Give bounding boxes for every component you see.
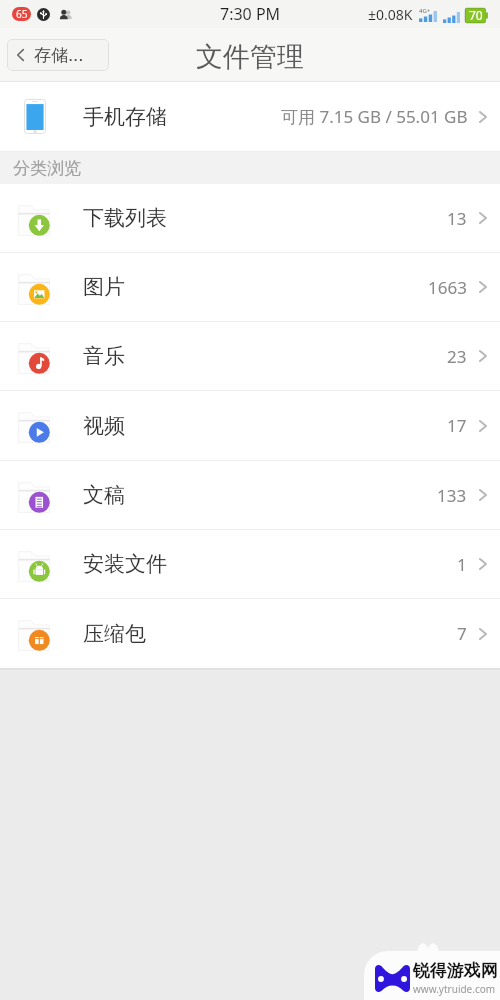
staticText: 7 bbox=[457, 622, 467, 645]
staticText: 7:30 PM bbox=[220, 3, 281, 25]
button[interactable]: 安装文件 bbox=[0, 530, 500, 598]
staticText: www.ytruide.com bbox=[413, 982, 496, 996]
staticText: 手机存储 bbox=[83, 104, 167, 130]
button[interactable]: 下载列表 bbox=[0, 184, 500, 252]
staticText: 70 bbox=[469, 7, 483, 23]
staticText: 可用 7.15 GB / 55.01 GB bbox=[281, 105, 468, 128]
staticText: 存储... bbox=[34, 45, 84, 66]
button[interactable]: 返回 存储 bbox=[7, 39, 109, 71]
button[interactable]: 图片 bbox=[0, 253, 500, 321]
staticText: 安装文件 bbox=[83, 551, 167, 577]
staticText: 65 bbox=[16, 7, 28, 21]
staticText: 视频 bbox=[83, 413, 125, 439]
staticText: 音乐 bbox=[83, 343, 125, 369]
staticText: 1663 bbox=[428, 276, 467, 299]
button[interactable]: 视频 bbox=[0, 391, 500, 460]
staticText: 锐得游戏网 bbox=[413, 960, 498, 981]
staticText: 文件管理 bbox=[196, 40, 304, 74]
staticText: 文稿 bbox=[83, 482, 125, 508]
staticText: 4G+ bbox=[419, 7, 431, 15]
button[interactable]: 压缩包 bbox=[0, 599, 500, 668]
staticText: 分类浏览 bbox=[13, 158, 81, 179]
staticText: 压缩包 bbox=[83, 621, 146, 647]
staticText: 13 bbox=[447, 207, 467, 230]
staticText: ±0.08K bbox=[368, 5, 413, 24]
staticText: 图片 bbox=[83, 274, 125, 300]
staticText: 23 bbox=[447, 345, 467, 368]
button[interactable]: 手机存储 bbox=[0, 82, 500, 151]
button[interactable]: 文稿 bbox=[0, 461, 500, 529]
staticText: 下载列表 bbox=[83, 205, 167, 231]
button[interactable]: 音乐 bbox=[0, 322, 500, 390]
staticText: 17 bbox=[447, 414, 467, 437]
staticText: 133 bbox=[437, 484, 467, 507]
staticText: 1 bbox=[457, 553, 467, 576]
